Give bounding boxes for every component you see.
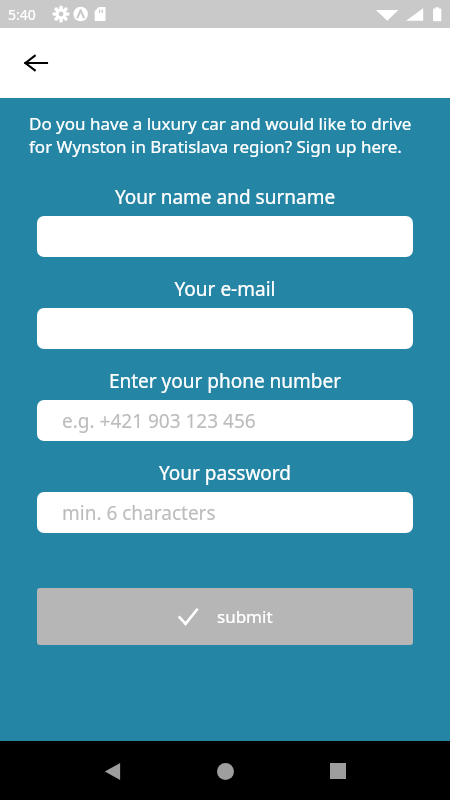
staticText: min. 6 characters bbox=[62, 500, 216, 526]
button[interactable]: Recent apps bbox=[314, 747, 362, 795]
staticText: Your name and surname bbox=[37, 184, 413, 210]
button[interactable] bbox=[37, 308, 413, 349]
staticText: 5:40 bbox=[8, 5, 36, 24]
staticText: Your password bbox=[37, 460, 413, 486]
staticText: Your e-mail bbox=[37, 276, 413, 302]
button[interactable]: e.g. +421 903 123 456 bbox=[37, 400, 413, 441]
staticText: Do you have a luxury car and would like … bbox=[29, 112, 426, 158]
button[interactable]: Home bbox=[201, 747, 249, 795]
staticText: Enter your phone number bbox=[37, 368, 413, 394]
button[interactable] bbox=[37, 216, 413, 257]
button[interactable]: min. 6 characters bbox=[37, 492, 413, 533]
staticText: e.g. +421 903 123 456 bbox=[62, 408, 256, 434]
button[interactable]: Back bbox=[12, 39, 60, 87]
staticText: submit bbox=[217, 605, 273, 628]
button[interactable]: submit bbox=[37, 588, 413, 645]
button[interactable]: Back bbox=[88, 747, 136, 795]
